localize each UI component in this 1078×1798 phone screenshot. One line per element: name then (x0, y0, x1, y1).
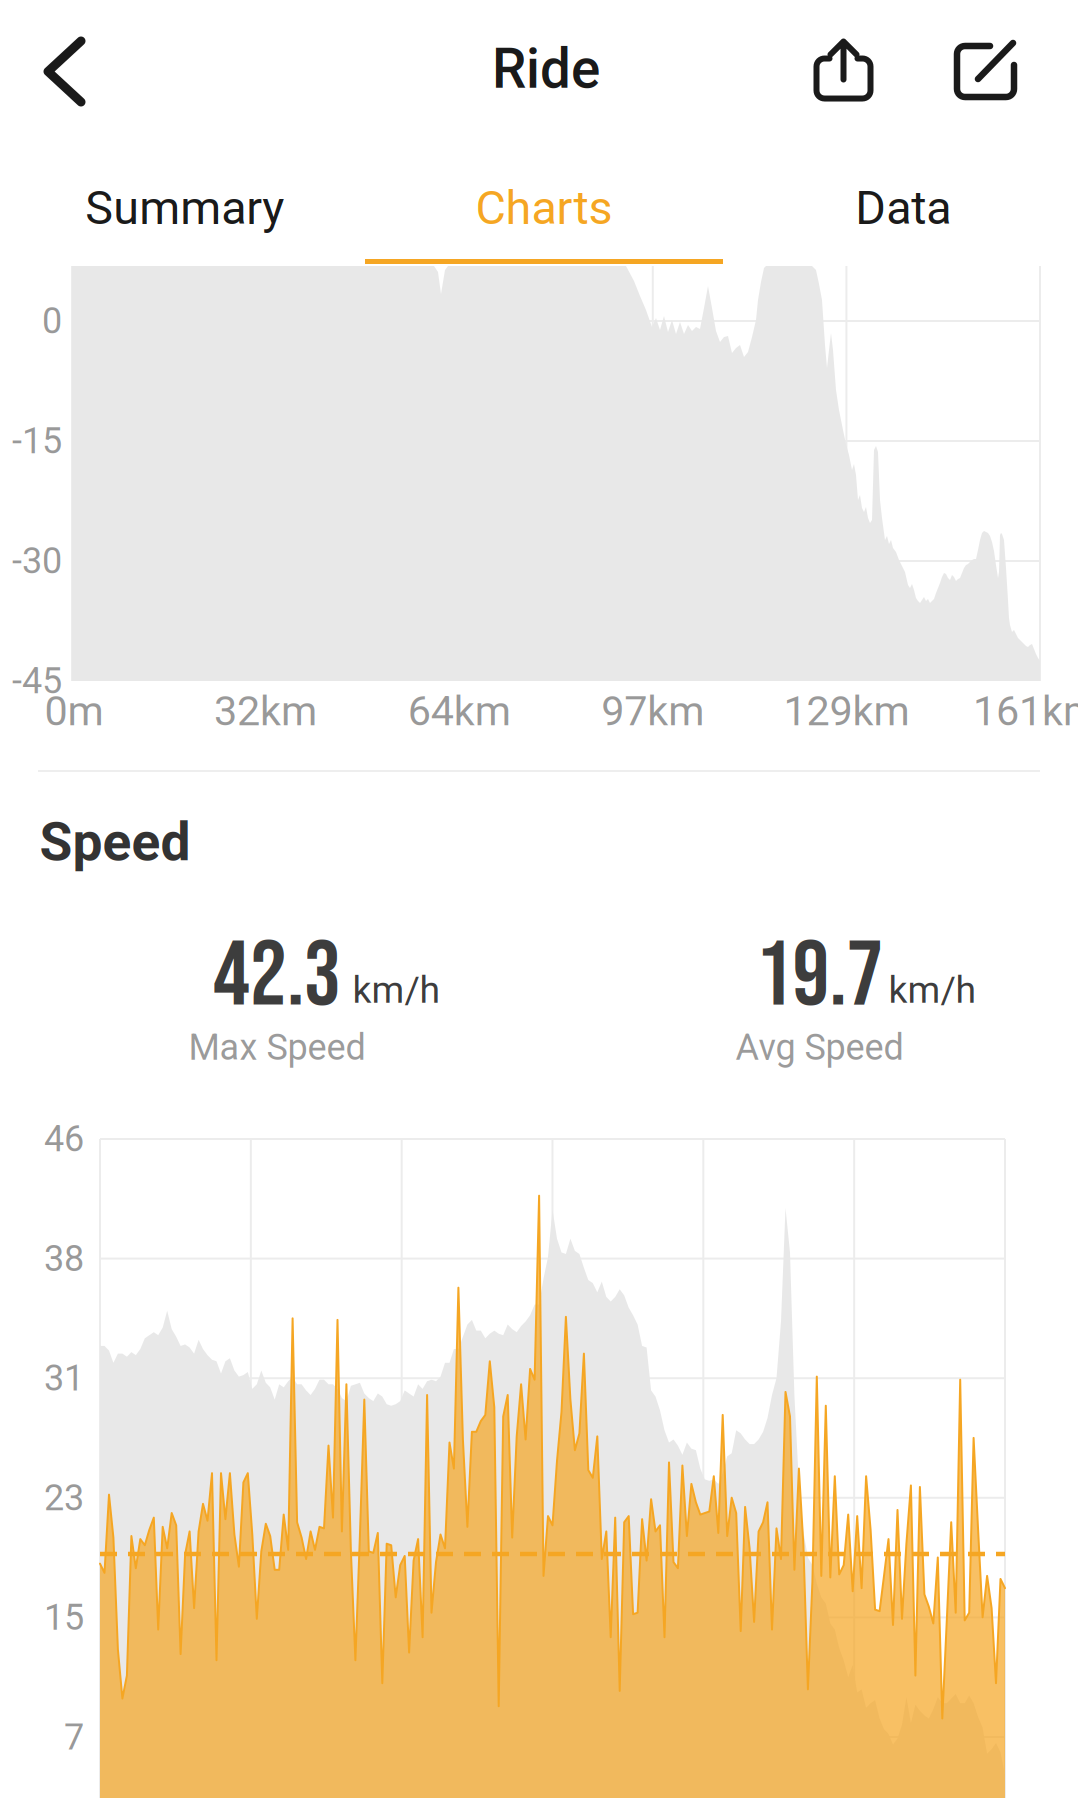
staticText: Charts (475, 181, 612, 235)
staticText: Data (855, 181, 951, 235)
button[interactable]: Summary (5, 153, 364, 263)
staticText: Avg Speed (735, 1026, 903, 1069)
staticText: Speed (39, 811, 190, 873)
staticText: km/h (888, 968, 976, 1012)
staticText: 38 (44, 1237, 84, 1280)
staticText: 31 (44, 1357, 84, 1399)
staticText: 7 (64, 1716, 84, 1758)
staticText: 46 (44, 1118, 84, 1160)
staticText: 129km (783, 687, 909, 735)
button[interactable]: Back (41, 34, 97, 109)
staticText: 32km (214, 687, 317, 735)
staticText: 64km (408, 687, 511, 735)
staticText: 0m (44, 687, 103, 735)
staticText: 19.7 (755, 922, 883, 1032)
staticText: Ride (492, 37, 600, 101)
button[interactable]: Data (724, 153, 1078, 263)
staticText: 42.3 (213, 922, 341, 1032)
staticText: 15 (44, 1596, 84, 1639)
button[interactable]: Charts (364, 153, 723, 263)
staticText: -45 (12, 660, 62, 702)
button[interactable]: Share (813, 35, 873, 101)
staticText: Summary (85, 181, 284, 235)
staticText: 23 (44, 1477, 84, 1519)
staticText: -15 (12, 420, 62, 462)
staticText: km/h (352, 968, 440, 1012)
staticText: 97km (601, 687, 704, 735)
staticText: 161km (973, 687, 1078, 735)
staticText: -30 (12, 540, 62, 582)
button[interactable]: Edit (951, 38, 1019, 102)
staticText: Max Speed (188, 1026, 365, 1069)
staticText: 0 (42, 300, 62, 342)
